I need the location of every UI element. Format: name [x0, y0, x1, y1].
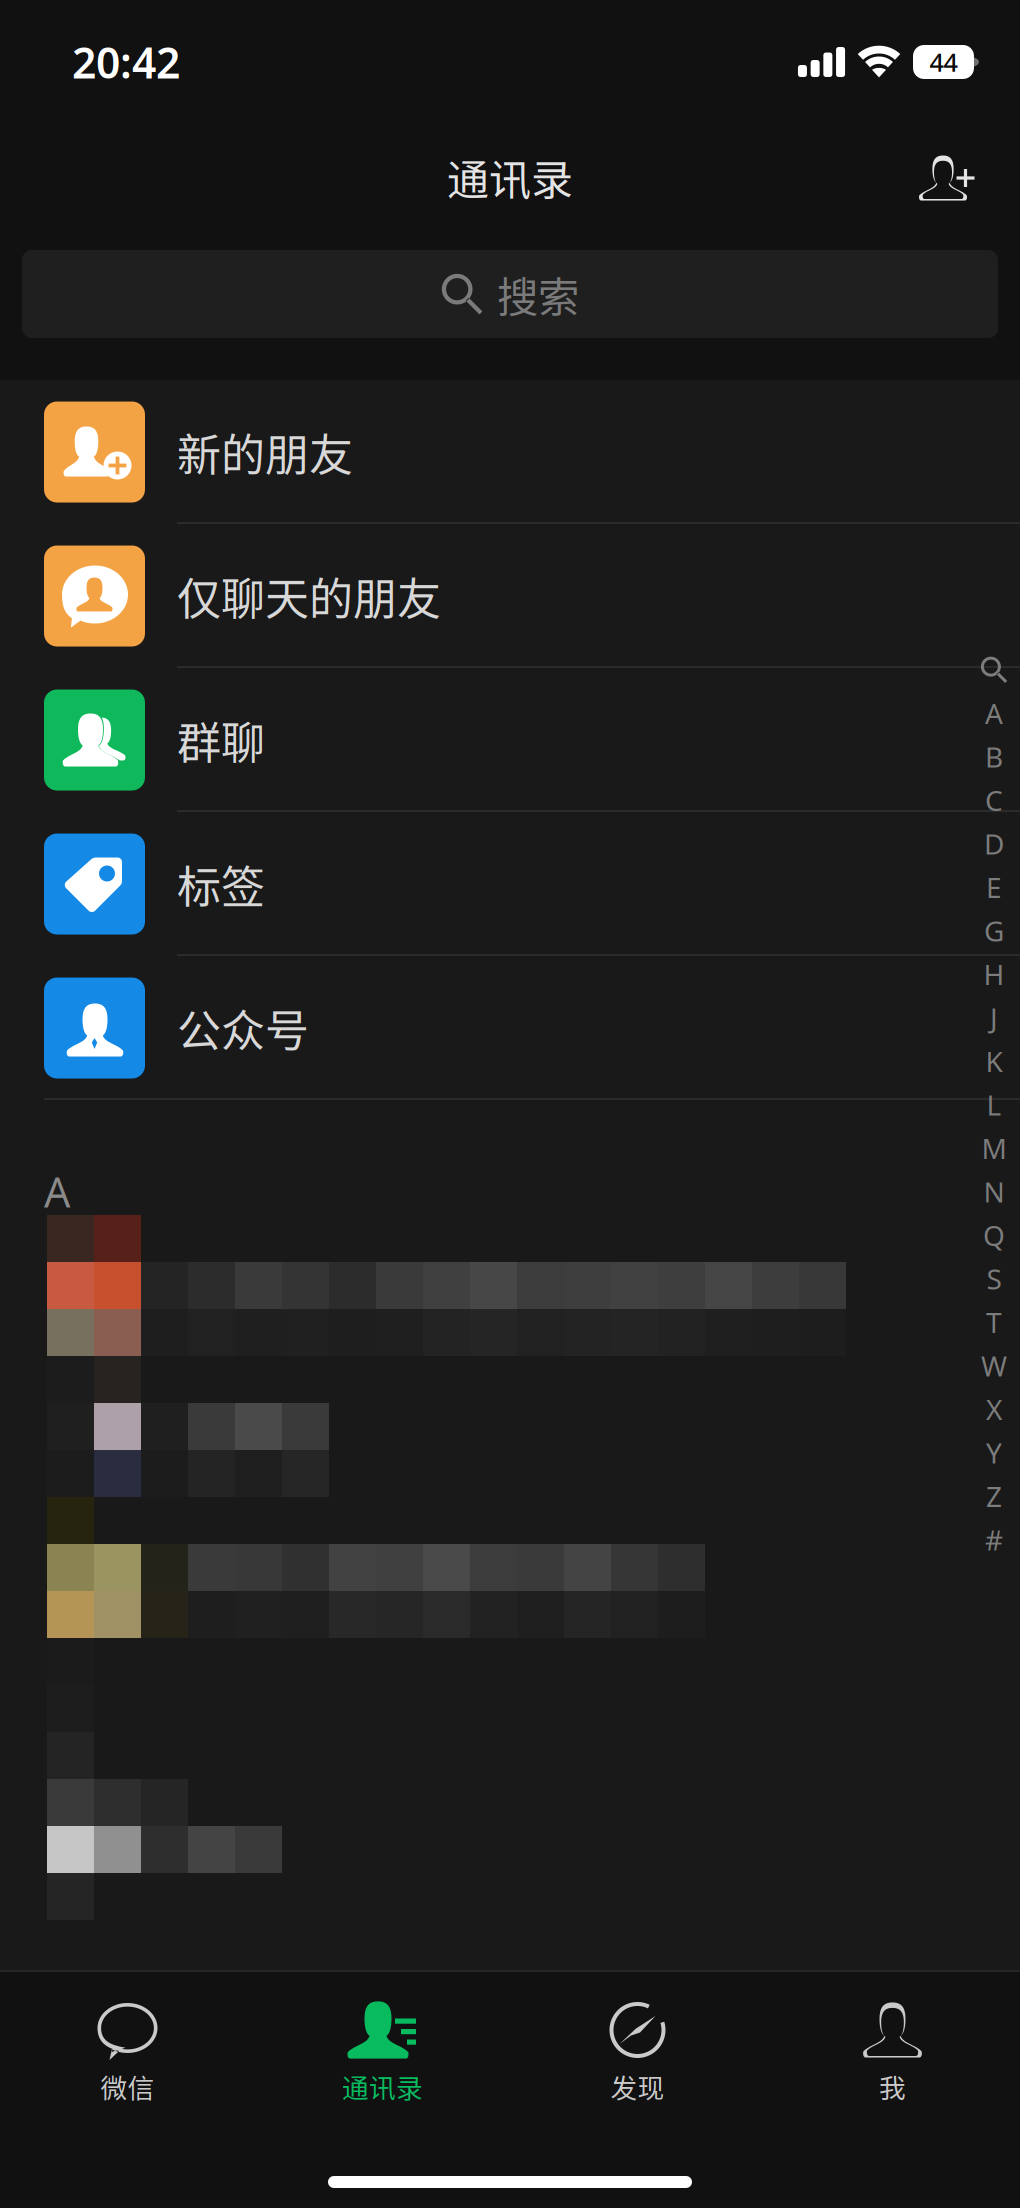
button[interactable]: Contact: [0, 1653, 1020, 1797]
button[interactable]: 仅聊天的朋友: [0, 524, 1020, 668]
button[interactable]: 发现: [510, 1972, 765, 2126]
button[interactable]: 标签: [0, 812, 1020, 956]
button[interactable]: M: [968, 1126, 1020, 1170]
staticText: D: [984, 825, 1004, 862]
button[interactable]: T: [968, 1300, 1020, 1344]
staticText: C: [985, 782, 1003, 819]
button[interactable]: 我: [765, 1972, 1020, 2126]
button[interactable]: Z: [968, 1474, 1020, 1518]
button[interactable]: K: [968, 1039, 1020, 1083]
staticText: B: [985, 738, 1003, 775]
button[interactable]: N: [968, 1170, 1020, 1213]
button[interactable]: W: [968, 1344, 1020, 1387]
button[interactable]: 公众号: [0, 956, 1020, 1100]
staticText: A: [44, 1164, 70, 1219]
staticText: 新的朋友: [177, 420, 353, 484]
staticText: 微信: [100, 2067, 154, 2106]
button[interactable]: 微信: [0, 1972, 255, 2126]
staticText: 我: [879, 2067, 906, 2106]
button[interactable]: G: [968, 909, 1020, 952]
button[interactable]: Contact: [0, 1179, 1020, 1323]
button[interactable]: H: [968, 952, 1020, 996]
button[interactable]: 新的朋友: [0, 380, 1020, 524]
staticText: N: [983, 1173, 1004, 1210]
button[interactable]: Contact: [0, 1323, 1020, 1467]
button[interactable]: 搜索: [22, 250, 998, 338]
staticText: S: [986, 1260, 1001, 1297]
button[interactable]: L: [968, 1083, 1020, 1126]
button[interactable]: Contact: [0, 1467, 1020, 1611]
button[interactable]: 通讯录: [255, 1972, 510, 2126]
staticText: 标签: [177, 852, 265, 916]
staticText: 通讯录: [447, 147, 573, 207]
staticText: 发现: [610, 2067, 664, 2106]
button[interactable]: Search contacts: [968, 648, 1020, 691]
button[interactable]: C: [968, 778, 1020, 822]
button[interactable]: E: [968, 865, 1020, 909]
staticText: Z: [986, 1478, 1002, 1515]
button[interactable]: S: [968, 1257, 1020, 1300]
staticText: K: [985, 1043, 1002, 1080]
staticText: M: [981, 1130, 1006, 1167]
button[interactable]: B: [968, 735, 1020, 778]
staticText: W: [981, 1347, 1007, 1384]
staticText: J: [990, 999, 998, 1036]
button[interactable]: Y: [968, 1431, 1020, 1474]
staticText: A: [985, 695, 1003, 732]
button[interactable]: Add contact: [895, 126, 999, 230]
staticText: E: [986, 869, 1002, 906]
staticText: 公众号: [177, 996, 309, 1060]
staticText: 通讯录: [342, 2067, 423, 2106]
staticText: 20:42: [72, 34, 180, 90]
button[interactable]: #: [968, 1518, 1020, 1561]
staticText: #: [985, 1521, 1003, 1558]
staticText: 群聊: [177, 708, 265, 772]
button[interactable]: J: [968, 996, 1020, 1039]
staticText: G: [984, 912, 1004, 949]
button[interactable]: X: [968, 1387, 1020, 1431]
staticText: 仅聊天的朋友: [177, 564, 441, 628]
staticText: Y: [986, 1434, 1002, 1471]
button[interactable]: 群聊: [0, 668, 1020, 812]
staticText: H: [983, 956, 1004, 993]
staticText: 44: [929, 45, 957, 79]
button[interactable]: A: [968, 691, 1020, 735]
staticText: Q: [983, 1217, 1005, 1254]
button[interactable]: Q: [968, 1213, 1020, 1257]
staticText: L: [986, 1086, 1001, 1123]
staticText: X: [986, 1391, 1002, 1428]
staticText: T: [986, 1304, 1002, 1341]
staticText: 搜索: [497, 264, 579, 324]
button[interactable]: D: [968, 822, 1020, 865]
